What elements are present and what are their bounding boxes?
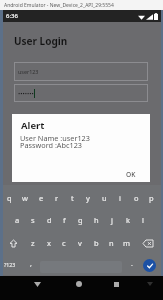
- staticText: f: [63, 215, 66, 225]
- button[interactable]: r: [50, 190, 64, 206]
- button[interactable]: Recents: [109, 277, 123, 291]
- staticText: t: [71, 193, 74, 203]
- button[interactable]: ?123: [3, 256, 17, 272]
- staticText: j: [111, 215, 113, 225]
- button[interactable]: Shift: [6, 235, 20, 251]
- button[interactable]: o: [129, 190, 143, 206]
- button[interactable]: Backspace: [140, 235, 156, 251]
- button[interactable]: j: [105, 212, 119, 228]
- staticText: e: [39, 193, 44, 203]
- button[interactable]: Comma: [25, 256, 37, 272]
- staticText: d: [47, 215, 52, 225]
- staticText: ?123: [4, 261, 16, 268]
- staticText: x: [47, 238, 51, 248]
- button[interactable]: s: [26, 212, 40, 228]
- button[interactable]: user123: [14, 62, 148, 81]
- staticText: c: [62, 238, 66, 248]
- staticText: z: [31, 238, 35, 248]
- button[interactable]: Enter: [143, 259, 156, 272]
- button[interactable]: e: [34, 190, 48, 206]
- staticText: Password :Abc123: [20, 140, 83, 150]
- button[interactable]: g: [73, 212, 87, 228]
- staticText: Android Emulator - New_Device_2_API_29:5…: [4, 2, 114, 9]
- button[interactable]: d: [42, 212, 56, 228]
- button[interactable]: w: [18, 190, 32, 206]
- staticText: q: [7, 193, 12, 203]
- staticText: 6:36: [6, 12, 18, 20]
- button[interactable]: f: [57, 212, 71, 228]
- staticText: a: [15, 215, 20, 225]
- button[interactable]: x: [42, 235, 56, 251]
- staticText: .: [131, 259, 133, 269]
- staticText: l: [142, 215, 144, 225]
- staticText: i: [119, 193, 121, 203]
- button[interactable]: a: [10, 212, 24, 228]
- button[interactable]: h: [89, 212, 103, 228]
- button[interactable]: k: [121, 212, 135, 228]
- button[interactable]: b: [89, 235, 103, 251]
- staticText: y: [86, 193, 90, 203]
- staticText: User Name :user123: [20, 133, 90, 143]
- staticText: Alert: [21, 119, 45, 132]
- button[interactable]: n: [104, 235, 118, 251]
- staticText: User Login: [14, 34, 68, 48]
- staticText: OK: [126, 170, 136, 179]
- button[interactable]: u: [97, 190, 111, 206]
- staticText: v: [78, 238, 82, 248]
- button[interactable]: m: [120, 235, 134, 251]
- staticText: o: [134, 193, 139, 203]
- button[interactable]: Home: [72, 277, 86, 291]
- button[interactable]: q: [2, 190, 16, 206]
- staticText: s: [31, 215, 35, 225]
- staticText: ,: [30, 259, 32, 269]
- staticText: p: [149, 193, 154, 203]
- button[interactable]: c: [57, 235, 71, 251]
- button[interactable]: Hide keyboard: [143, 277, 157, 291]
- staticText: w: [22, 193, 28, 203]
- staticText: r: [55, 193, 59, 203]
- button[interactable]: z: [26, 235, 40, 251]
- staticText: •••••••: [18, 90, 34, 98]
- staticText: k: [126, 215, 131, 225]
- button[interactable]: OK: [123, 168, 139, 181]
- staticText: user123: [18, 68, 39, 75]
- button[interactable]: l: [136, 212, 150, 228]
- button[interactable]: Back: [30, 277, 44, 291]
- staticText: h: [94, 215, 99, 225]
- staticText: g: [78, 215, 83, 225]
- staticText: n: [109, 238, 114, 248]
- button[interactable]: y: [81, 190, 95, 206]
- button[interactable]: i: [113, 190, 127, 206]
- button[interactable]: p: [144, 190, 158, 206]
- button[interactable]: •••••••: [14, 84, 148, 102]
- button[interactable]: Period: [126, 256, 138, 272]
- staticText: b: [94, 238, 99, 248]
- staticText: m: [123, 238, 131, 248]
- button[interactable]: v: [73, 235, 87, 251]
- staticText: u: [102, 193, 107, 203]
- button[interactable]: t: [65, 190, 79, 206]
